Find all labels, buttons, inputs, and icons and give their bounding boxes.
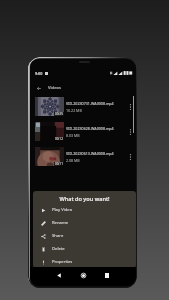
- button[interactable]: Recents: [100, 268, 114, 282]
- button[interactable]: More options: [126, 125, 134, 139]
- staticText: What do you want!: [33, 195, 136, 203]
- button[interactable]: 00:12: [30, 119, 136, 144]
- button[interactable]: Play Video: [33, 203, 136, 216]
- staticText: Play Video: [52, 207, 73, 213]
- button[interactable]: Delete: [33, 242, 136, 255]
- button[interactable]: Properties: [33, 255, 136, 268]
- button[interactable]: More options: [126, 100, 134, 114]
- staticText: Share: [52, 233, 64, 239]
- staticText: Properties: [52, 259, 73, 265]
- staticText: VID-20230613-WA0008.mp4: [66, 151, 114, 156]
- staticText: VID-20230731-WA0008.mp4: [66, 101, 114, 106]
- button[interactable]: Back: [34, 83, 44, 93]
- button[interactable]: Share: [33, 229, 136, 242]
- staticText: Rename: [52, 220, 69, 226]
- staticText: 9:00: [35, 71, 43, 76]
- staticText: 10.22 MB: [66, 108, 82, 113]
- button[interactable]: Rename: [33, 216, 136, 229]
- button[interactable]: More options: [126, 150, 134, 164]
- staticText: 00:11: [55, 162, 63, 166]
- staticText: 8.03 MB: [66, 133, 80, 138]
- button[interactable]: 00:11: [30, 144, 136, 169]
- staticText: 00:35: [55, 112, 63, 116]
- button[interactable]: 00:35: [30, 94, 136, 119]
- staticText: Delete: [52, 246, 65, 252]
- staticText: 2.08 MB: [66, 158, 80, 163]
- staticText: Videos: [48, 85, 62, 91]
- button[interactable]: Back: [52, 268, 66, 282]
- staticText: 00:12: [55, 137, 63, 141]
- staticText: VID-20230628-WA0008.mp4: [66, 126, 114, 131]
- button[interactable]: Home: [76, 268, 90, 282]
